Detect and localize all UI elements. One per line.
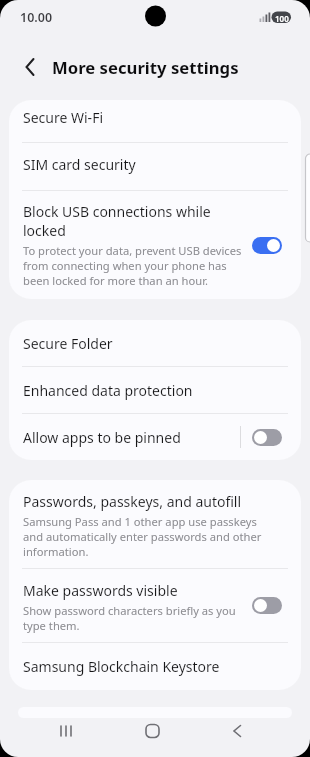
button[interactable]: Secure Folder: [9, 320, 301, 366]
button[interactable]: Enhanced data protection: [9, 367, 301, 413]
button[interactable]: SIM card security: [9, 143, 301, 190]
staticText: Block USB connections while locked: [23, 202, 211, 240]
staticText: SIM card security: [23, 155, 136, 174]
button[interactable]: [252, 237, 282, 254]
staticText: To protect your data, prevent USB device…: [23, 243, 242, 288]
staticText: Allow apps to be pinned: [23, 428, 240, 447]
staticText: Enhanced data protection: [23, 381, 193, 400]
button[interactable]: [104, 718, 207, 757]
staticText: Passwords, passkeys, and autofill: [23, 492, 242, 511]
button[interactable]: Make passwords visible: [9, 569, 301, 642]
button[interactable]: Allow apps to be pinned: [9, 414, 301, 460]
staticText: Samsung Pass and 1 other app use passkey…: [23, 514, 262, 559]
staticText: Show password characters briefly as you …: [23, 603, 236, 633]
button[interactable]: [207, 718, 310, 757]
button[interactable]: [252, 429, 282, 446]
staticText: 10.00: [20, 9, 53, 26]
button[interactable]: Block USB connections while locked: [9, 191, 301, 299]
button[interactable]: [252, 597, 282, 614]
staticText: Make passwords visible: [23, 581, 178, 600]
staticText: Secure Wi-Fi: [23, 108, 104, 127]
staticText: Secure Folder: [23, 334, 113, 353]
button[interactable]: [14, 51, 46, 83]
staticText: Samsung Blockchain Keystore: [23, 657, 220, 676]
button[interactable]: [0, 718, 104, 757]
staticText: More security settings: [52, 56, 239, 79]
staticText: 100: [275, 13, 289, 24]
button[interactable]: Secure Wi-Fi: [9, 100, 301, 142]
button[interactable]: Passwords, passkeys, and autofill: [9, 480, 301, 568]
button[interactable]: Samsung Blockchain Keystore: [9, 643, 301, 690]
